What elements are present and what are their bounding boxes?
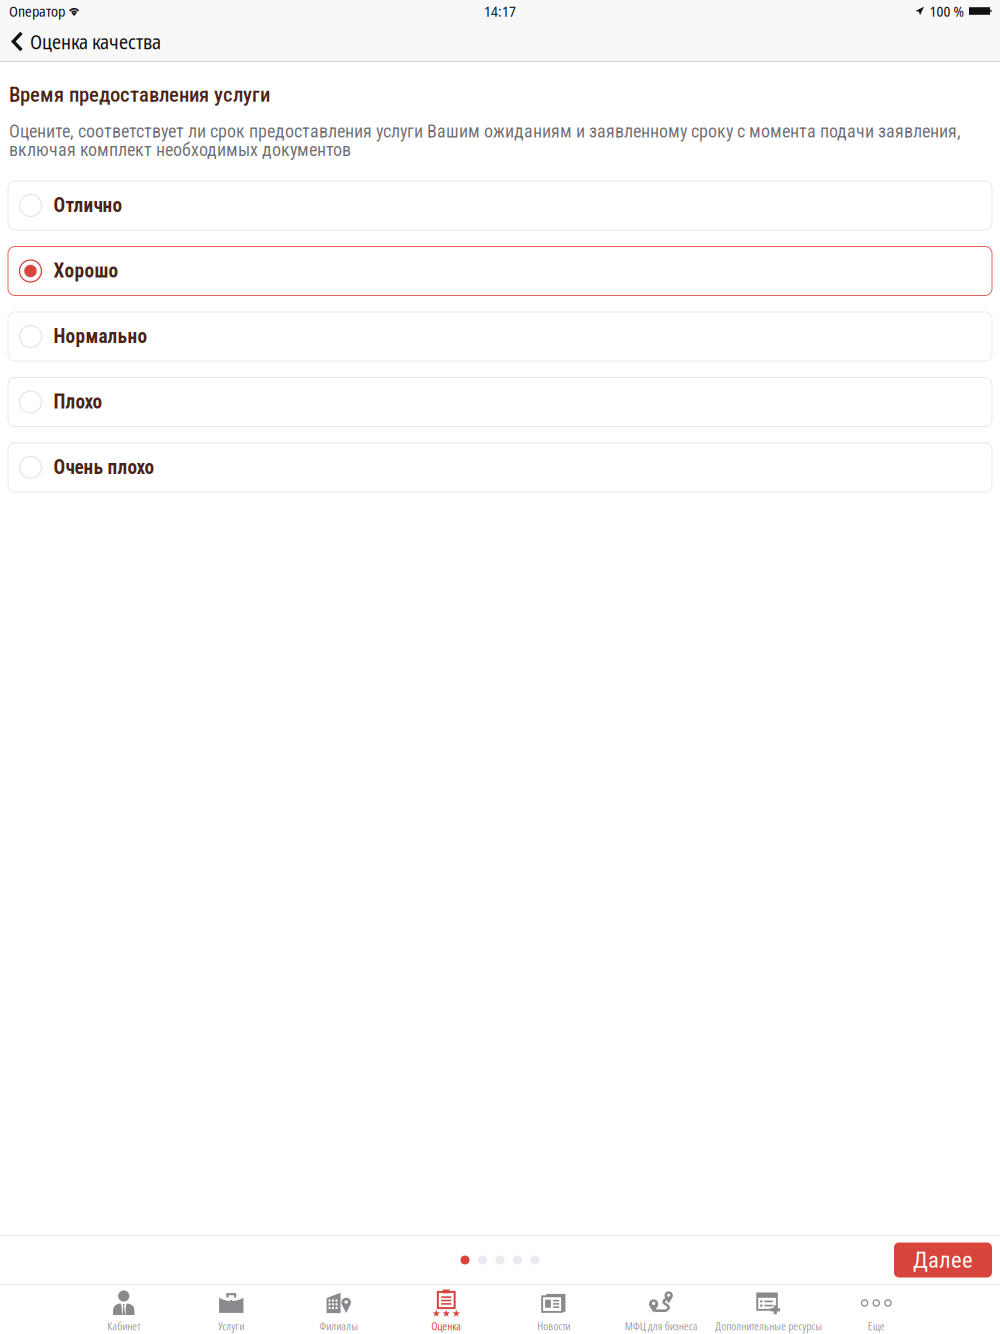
staticText: МФЦ для бизнеса [625, 1318, 698, 1334]
button[interactable]: Филиалы [285, 1285, 392, 1334]
staticText: Очень плохо [53, 456, 154, 479]
button[interactable]: Отлично [8, 181, 992, 230]
staticText: Еще [868, 1318, 885, 1334]
button[interactable]: Хорошо [8, 246, 992, 295]
button[interactable]: Еще [822, 1285, 930, 1334]
button[interactable]: Оценка качества [0, 22, 161, 61]
button[interactable]: Далее [894, 1242, 992, 1277]
button[interactable]: Плохо [8, 377, 992, 426]
staticText: Хорошо [53, 260, 118, 282]
staticText: 14:17 [484, 1, 516, 21]
button[interactable]: Очень плохо [8, 443, 992, 492]
button[interactable]: Оценка [392, 1285, 500, 1334]
button[interactable]: Новости [500, 1285, 607, 1334]
staticText: Далее [913, 1247, 973, 1273]
button[interactable]: Дополнительные ресурсы [715, 1285, 822, 1334]
staticText: Кабинет [107, 1318, 140, 1334]
staticText: 100 % [930, 1, 964, 21]
button[interactable]: Нормально [8, 312, 992, 361]
staticText: Время предоставления услуги [9, 83, 270, 107]
staticText: Новости [537, 1318, 570, 1334]
staticText: Оценка [431, 1318, 461, 1334]
staticText: Услуги [218, 1318, 244, 1334]
staticText: Оцените, соответствует ли срок предостав… [9, 121, 961, 160]
staticText: Дополнительные ресурсы [715, 1318, 822, 1334]
button[interactable]: Кабинет [70, 1285, 177, 1334]
staticText: Отлично [53, 194, 122, 217]
button[interactable]: Услуги [177, 1285, 285, 1334]
button[interactable]: МФЦ для бизнеса [607, 1285, 715, 1334]
staticText: Нормально [53, 325, 147, 348]
staticText: Плохо [53, 391, 102, 413]
staticText: Оценка качества [30, 28, 161, 55]
staticText: Филиалы [319, 1318, 358, 1334]
staticText: Оператор [9, 1, 65, 21]
